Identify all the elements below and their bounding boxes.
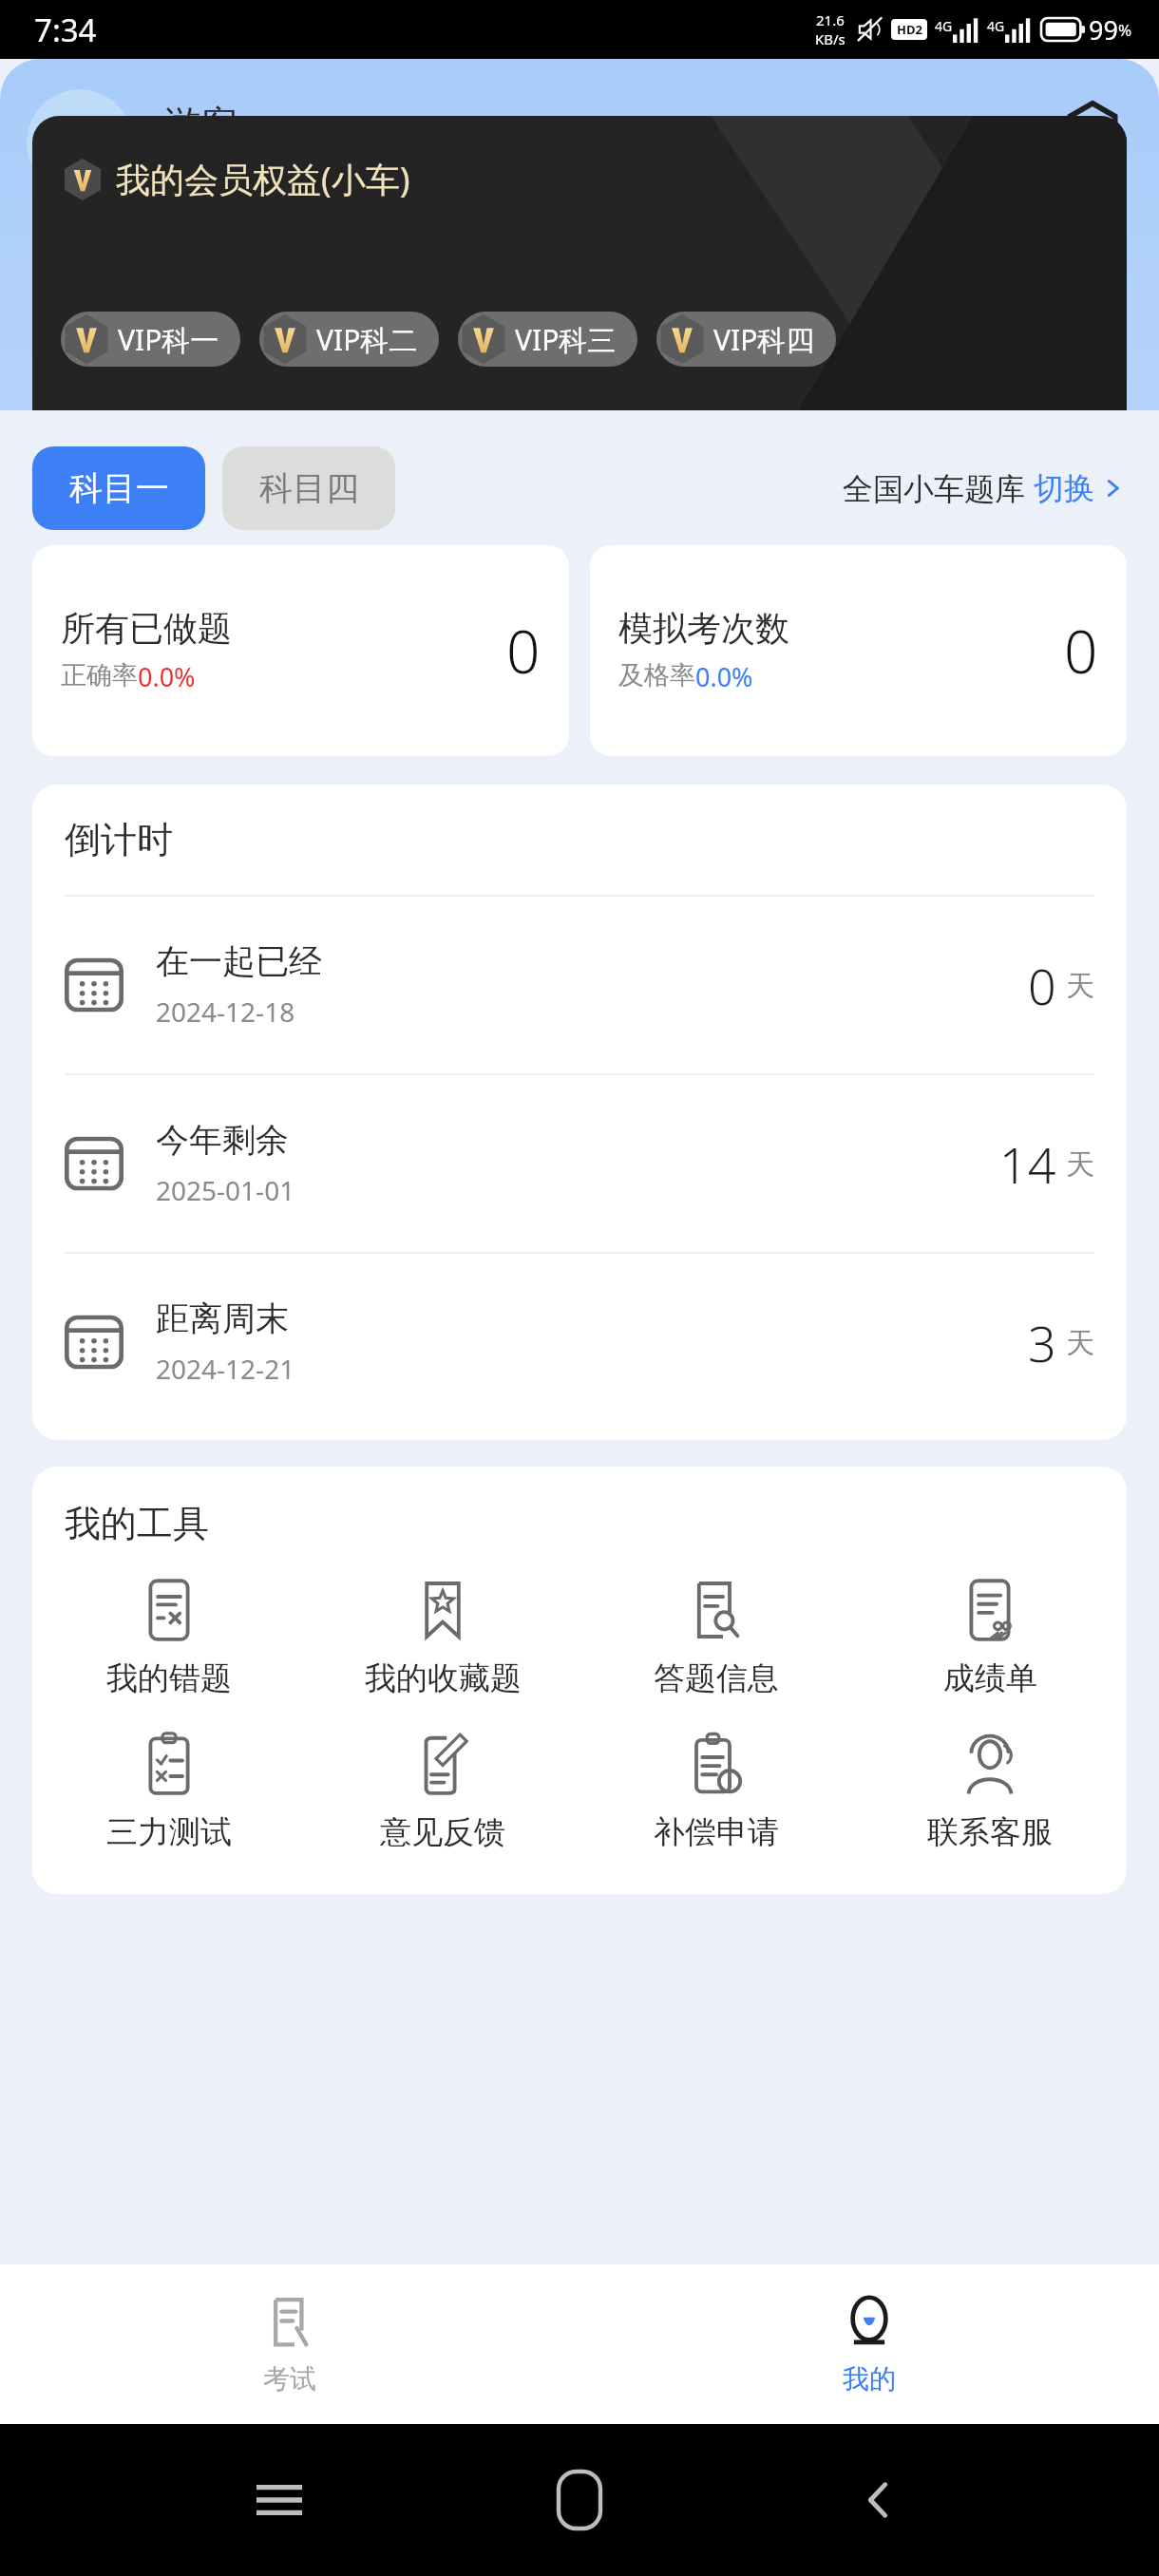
button[interactable]: 联系客服 <box>853 1721 1127 1862</box>
staticText: 答题信息 <box>654 1658 779 1698</box>
button[interactable]: 所有已做题 <box>32 545 569 756</box>
staticText: 2024-12-21 <box>156 1351 295 1387</box>
staticText: 3 <box>1028 1309 1056 1376</box>
button[interactable]: 我的收藏题 <box>306 1567 579 1708</box>
staticText: 天 <box>1066 968 1094 1004</box>
staticText: 14 <box>999 1130 1056 1198</box>
staticText: 联系客服 <box>927 1812 1053 1852</box>
button[interactable]: 意见反馈 <box>306 1721 579 1862</box>
staticText: HD2 <box>897 21 922 38</box>
button[interactable]: 在一起已经 <box>65 897 1094 1073</box>
staticText: 99 <box>1089 12 1118 47</box>
staticText: 切换 <box>1034 469 1094 507</box>
button[interactable]: VIP科一 <box>61 312 240 367</box>
staticText: 0 <box>1064 611 1098 691</box>
staticText: KB/s <box>815 29 845 48</box>
staticText: 我的收藏题 <box>365 1658 522 1698</box>
staticText: 距离周末 <box>156 1297 289 1339</box>
button[interactable]: 科目一 <box>32 446 205 530</box>
button[interactable]: 今年剩余 <box>65 1075 1094 1252</box>
staticText: 0.0% <box>695 659 753 694</box>
button[interactable]: VIP科二 <box>259 312 439 367</box>
staticText: 游客 <box>163 101 239 148</box>
button[interactable]: 成绩单 <box>853 1567 1127 1708</box>
staticText: 我的 <box>843 2362 896 2396</box>
staticText: 及格率 <box>618 659 695 691</box>
button[interactable]: 全国小车题库 <box>837 462 1130 515</box>
staticText: 我的错题 <box>106 1658 232 1698</box>
staticText: 4G <box>987 17 1005 35</box>
staticText: 天 <box>1066 1146 1094 1183</box>
staticText: 提高正确率,同步答题数据 <box>163 167 496 207</box>
button[interactable]: 三力测试 <box>32 1721 306 1862</box>
button[interactable]: VIP科四 <box>656 312 836 367</box>
staticText: 全国小车题库 <box>843 467 1034 509</box>
staticText: 补偿申请 <box>654 1812 779 1852</box>
staticText: 倒计时 <box>65 817 173 862</box>
staticText: 21.6 <box>816 10 845 29</box>
staticText: 0.0% <box>138 659 196 694</box>
staticText: 科目四 <box>259 467 359 509</box>
button[interactable]: 模拟考次数 <box>590 545 1127 756</box>
staticText: 天 <box>1066 1325 1094 1361</box>
staticText: VIP科一 <box>118 320 219 359</box>
staticText: 2024-12-18 <box>156 994 295 1030</box>
staticText: 意见反馈 <box>380 1812 505 1852</box>
staticText: 我的工具 <box>65 1501 209 1546</box>
staticText: 正确率 <box>61 659 138 691</box>
button[interactable]: 我的 <box>579 2264 1159 2424</box>
button[interactable]: 补偿申请 <box>579 1721 853 1862</box>
staticText: 0 <box>1028 952 1056 1019</box>
staticText: 在一起已经 <box>156 940 322 982</box>
staticText: VIP科二 <box>316 320 418 359</box>
staticText: VIP科三 <box>515 320 617 359</box>
button[interactable]: 考试 <box>0 2264 579 2424</box>
button[interactable]: 科目四 <box>222 446 395 530</box>
staticText: 4G <box>935 17 953 35</box>
button[interactable] <box>27 89 133 196</box>
staticText: 7:34 <box>34 9 97 51</box>
staticText: 科目一 <box>69 467 169 509</box>
staticText: 2025-01-01 <box>156 1172 295 1208</box>
button[interactable]: 距离周末 <box>65 1254 1094 1430</box>
staticText: 成绩单 <box>943 1658 1037 1698</box>
staticText: 考试 <box>263 2362 316 2396</box>
staticText: 我的会员权益(小车) <box>116 156 410 202</box>
staticText: 今年剩余 <box>156 1119 289 1161</box>
staticText: VIP科四 <box>713 320 815 359</box>
button[interactable]: Settings <box>1053 89 1132 169</box>
staticText: % <box>1118 19 1132 41</box>
button[interactable]: 我的错题 <box>32 1567 306 1708</box>
staticText: 三力测试 <box>106 1812 232 1852</box>
staticText: 模拟考次数 <box>618 607 789 650</box>
button[interactable]: VIP科三 <box>458 312 637 367</box>
staticText: 所有已做题 <box>61 607 232 650</box>
button[interactable]: 答题信息 <box>579 1567 853 1708</box>
staticText: 0 <box>506 611 541 691</box>
